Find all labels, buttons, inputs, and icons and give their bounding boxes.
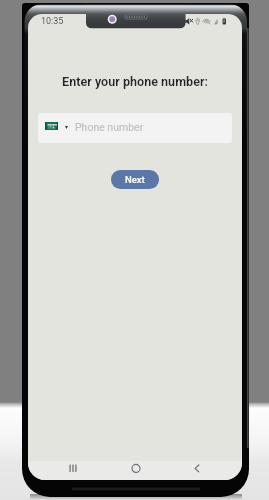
- staticText: Next: [125, 174, 145, 185]
- staticText: Phone number: [75, 121, 144, 133]
- button[interactable]: Back: [185, 461, 209, 480]
- staticText: 10:35: [41, 16, 64, 27]
- staticText: Enter your phone number:: [28, 74, 242, 89]
- button[interactable]: Next: [111, 170, 159, 189]
- button[interactable]: Recent apps: [61, 461, 85, 480]
- button[interactable]: Phone number: [38, 113, 232, 143]
- button[interactable]: Home: [124, 461, 148, 480]
